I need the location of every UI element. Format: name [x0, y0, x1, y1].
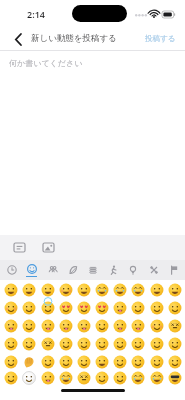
button[interactable]: Emoji	[129, 370, 146, 385]
button[interactable]: Emoji	[93, 317, 110, 334]
button[interactable]: Nature	[64, 260, 81, 280]
button[interactable]: Emoji	[129, 317, 146, 334]
button[interactable]: Emoji	[2, 370, 19, 385]
button[interactable]: Emoji	[57, 281, 74, 298]
button[interactable]: Emoji	[166, 335, 183, 352]
button[interactable]: Food	[84, 260, 101, 280]
button[interactable]: Emoji	[129, 335, 146, 352]
button[interactable]: Emoji	[75, 370, 92, 385]
button[interactable]: Back	[8, 29, 28, 49]
button[interactable]: Objects	[124, 260, 141, 280]
button[interactable]: Emoji	[2, 353, 19, 370]
button[interactable]: Emoji	[20, 335, 37, 352]
button[interactable]: Emoji	[93, 299, 110, 316]
button[interactable]: Emoji	[75, 299, 92, 316]
button[interactable]: Emoji	[111, 370, 128, 385]
button[interactable]: Emoji	[93, 370, 110, 385]
button[interactable]: Emoji	[20, 370, 37, 385]
button[interactable]: Emoji	[20, 317, 37, 334]
button[interactable]: Emoji	[20, 353, 37, 370]
button[interactable]: Emoji	[39, 353, 56, 370]
button[interactable]: Emoji	[2, 335, 19, 352]
button[interactable]: Stickers	[11, 239, 28, 256]
button[interactable]: Emoji	[166, 370, 183, 385]
button[interactable]: Emoji	[166, 281, 183, 298]
button[interactable]: Emoji	[20, 299, 37, 316]
button[interactable]: Emoji	[129, 299, 146, 316]
button[interactable]: Emoji	[166, 299, 183, 316]
staticText: 投稿する	[145, 34, 176, 43]
button[interactable]: Emoji	[111, 299, 128, 316]
button[interactable]: Emoji	[93, 281, 110, 298]
button[interactable]: Emoji	[57, 299, 74, 316]
button[interactable]: Emoji	[93, 335, 110, 352]
button[interactable]: Symbols	[145, 260, 162, 280]
button[interactable]: Emoji	[148, 299, 165, 316]
button[interactable]: Emoji	[111, 335, 128, 352]
button[interactable]: Smileys	[23, 260, 40, 280]
button[interactable]: Emoji	[39, 317, 56, 334]
button[interactable]: Emoji	[166, 317, 183, 334]
button[interactable]: Emoji	[111, 281, 128, 298]
button[interactable]: Emoji	[148, 353, 165, 370]
button[interactable]: Emoji	[166, 353, 183, 370]
button[interactable]: Emoji	[75, 353, 92, 370]
button[interactable]: Emoji	[129, 281, 146, 298]
button[interactable]: Emoji	[148, 370, 165, 385]
button[interactable]: 投稿する	[136, 29, 185, 48]
button[interactable]: Emoji	[39, 335, 56, 352]
button[interactable]: Emoji	[57, 353, 74, 370]
button[interactable]: Emoji	[2, 317, 19, 334]
button[interactable]: Recent	[3, 260, 20, 280]
button[interactable]: Flags	[165, 260, 182, 280]
button[interactable]: Activity	[104, 260, 121, 280]
button[interactable]: Emoji	[148, 335, 165, 352]
button[interactable]: Emoji	[129, 353, 146, 370]
button[interactable]: Emoji	[57, 317, 74, 334]
staticText: 2:14	[27, 8, 45, 20]
button[interactable]: Emoji	[20, 281, 37, 298]
button[interactable]: Emoji	[39, 299, 56, 316]
button[interactable]: Emoji	[39, 281, 56, 298]
button[interactable]: Emoji	[2, 299, 19, 316]
staticText: 新しい動態を投稿する	[31, 33, 117, 44]
button[interactable]: Emoji	[93, 353, 110, 370]
button[interactable]: Emoji	[148, 281, 165, 298]
button[interactable]: Emoji	[57, 335, 74, 352]
button[interactable]: Emoji	[2, 281, 19, 298]
button[interactable]: Emoji	[75, 317, 92, 334]
staticText: 何か書いてください	[9, 58, 83, 68]
button[interactable]: Emoji	[75, 281, 92, 298]
button[interactable]: People	[44, 260, 61, 280]
button[interactable]: Emoji	[111, 353, 128, 370]
button[interactable]: Emoji	[148, 317, 165, 334]
button[interactable]: Emoji	[75, 335, 92, 352]
button[interactable]: Emoji	[111, 317, 128, 334]
button[interactable]: Emoji	[57, 370, 74, 385]
button[interactable]: 何か書いてください	[0, 51, 185, 235]
button[interactable]: Emoji	[39, 370, 56, 385]
button[interactable]: Photos	[40, 239, 57, 256]
